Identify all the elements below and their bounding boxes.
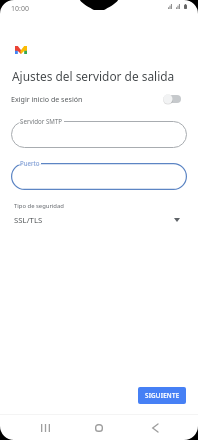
staticText: Ajustes del servidor de salida xyxy=(12,68,175,84)
button[interactable]: Recents xyxy=(30,413,60,440)
staticText: 10:00 xyxy=(11,4,29,14)
button[interactable]: Home xyxy=(84,413,114,440)
staticText: SSL/TLS xyxy=(14,215,43,226)
button[interactable]: Exigir inicio de sesión xyxy=(0,90,198,108)
staticText: Servidor SMTP xyxy=(20,117,63,125)
staticText: Puerto xyxy=(20,159,40,167)
button[interactable]: Tipo de seguridad xyxy=(0,200,198,230)
staticText: Exigir inicio de sesión xyxy=(11,94,83,104)
button[interactable]: SIGUIENTE xyxy=(138,387,186,404)
staticText: SIGUIENTE xyxy=(145,391,180,400)
button[interactable]: Back xyxy=(140,413,170,440)
staticText: Tipo de seguridad xyxy=(14,202,64,210)
